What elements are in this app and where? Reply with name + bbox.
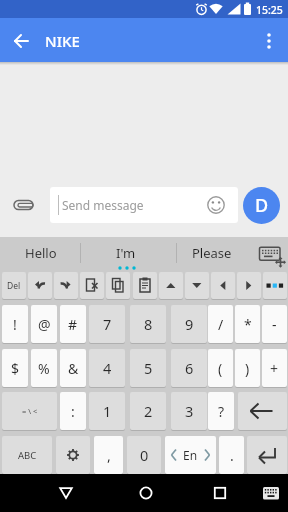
- staticText: Send message: [62, 197, 144, 213]
- staticText: @: [38, 315, 51, 334]
- staticText: 9: [185, 314, 194, 334]
- button[interactable]: 8: [130, 305, 166, 343]
- staticText: I'm: [116, 244, 136, 262]
- staticText: .: [230, 446, 234, 465]
- button[interactable]: [80, 272, 104, 299]
- button[interactable]: [185, 272, 209, 299]
- button[interactable]: = \ <: [2, 392, 57, 430]
- button[interactable]: [238, 392, 287, 430]
- button[interactable]: %: [31, 349, 57, 387]
- button[interactable]: [237, 272, 261, 299]
- button[interactable]: *: [235, 305, 260, 343]
- button[interactable]: !: [2, 305, 28, 343]
- staticText: 6: [185, 358, 194, 378]
- staticText: 3: [185, 401, 194, 421]
- staticText: /: [218, 315, 224, 334]
- button[interactable]: +: [262, 349, 287, 387]
- button[interactable]: Hello: [8, 237, 74, 269]
- button[interactable]: [200, 477, 240, 509]
- staticText: &: [68, 359, 79, 378]
- button[interactable]: En: [165, 436, 216, 474]
- staticText: +: [270, 359, 279, 378]
- button[interactable]: 3: [171, 392, 207, 430]
- button[interactable]: /: [208, 305, 233, 343]
- button[interactable]: :: [60, 392, 86, 430]
- button[interactable]: (: [208, 349, 233, 387]
- staticText: (: [218, 359, 223, 378]
- staticText: %: [38, 359, 50, 378]
- staticText: 2: [144, 401, 153, 421]
- button[interactable]: ,: [94, 436, 123, 474]
- button[interactable]: [247, 436, 287, 474]
- button[interactable]: 2: [130, 392, 166, 430]
- button[interactable]: [263, 272, 287, 299]
- button[interactable]: #: [60, 305, 86, 343]
- button[interactable]: 4: [89, 349, 125, 387]
- button[interactable]: [211, 272, 235, 299]
- staticText: 15:25: [256, 3, 283, 17]
- button[interactable]: I'm: [96, 237, 156, 269]
- staticText: En: [183, 447, 198, 463]
- staticText: D: [255, 193, 269, 218]
- button[interactable]: [126, 477, 166, 509]
- button[interactable]: [159, 272, 183, 299]
- button[interactable]: [56, 436, 90, 474]
- button[interactable]: $: [2, 349, 28, 387]
- button[interactable]: ?: [208, 392, 234, 430]
- staticText: 5: [144, 358, 153, 378]
- staticText: ?: [218, 402, 225, 421]
- button[interactable]: [106, 272, 130, 299]
- button[interactable]: 5: [130, 349, 166, 387]
- button[interactable]: ): [235, 349, 260, 387]
- staticText: :: [71, 402, 75, 421]
- staticText: NIKE: [45, 31, 80, 51]
- button[interactable]: 1: [89, 392, 125, 430]
- staticText: 4: [103, 358, 112, 378]
- button[interactable]: 7: [89, 305, 125, 343]
- button[interactable]: 9: [171, 305, 207, 343]
- button[interactable]: Send message: [50, 187, 238, 223]
- staticText: Please: [192, 244, 232, 262]
- staticText: 0: [140, 445, 149, 465]
- button[interactable]: [8, 193, 40, 217]
- button[interactable]: [258, 481, 284, 505]
- button[interactable]: Please: [182, 237, 242, 269]
- button[interactable]: -: [262, 305, 287, 343]
- staticText: #: [68, 315, 78, 334]
- staticText: ABC: [18, 449, 37, 462]
- button[interactable]: 0: [127, 436, 161, 474]
- button[interactable]: &: [60, 349, 86, 387]
- staticText: ,: [107, 446, 111, 465]
- button[interactable]: [258, 28, 282, 54]
- button[interactable]: [28, 272, 52, 299]
- staticText: $: [11, 359, 20, 378]
- button[interactable]: [250, 240, 286, 268]
- staticText: = \ <: [22, 406, 38, 416]
- button[interactable]: D: [243, 187, 280, 224]
- button[interactable]: [46, 477, 86, 509]
- button[interactable]: ABC: [2, 436, 52, 474]
- staticText: !: [13, 315, 17, 334]
- staticText: Del: [7, 280, 21, 292]
- button[interactable]: .: [219, 436, 244, 474]
- staticText: 8: [144, 314, 153, 334]
- staticText: -: [272, 315, 277, 334]
- staticText: *: [244, 315, 252, 334]
- button[interactable]: @: [31, 305, 57, 343]
- button[interactable]: [8, 28, 34, 54]
- button[interactable]: [133, 272, 157, 299]
- staticText: ): [245, 359, 250, 378]
- staticText: 1: [103, 401, 112, 421]
- button[interactable]: [54, 272, 78, 299]
- button[interactable]: 6: [171, 349, 207, 387]
- staticText: Hello: [25, 244, 57, 262]
- staticText: 7: [103, 314, 112, 334]
- button[interactable]: Del: [2, 272, 26, 299]
